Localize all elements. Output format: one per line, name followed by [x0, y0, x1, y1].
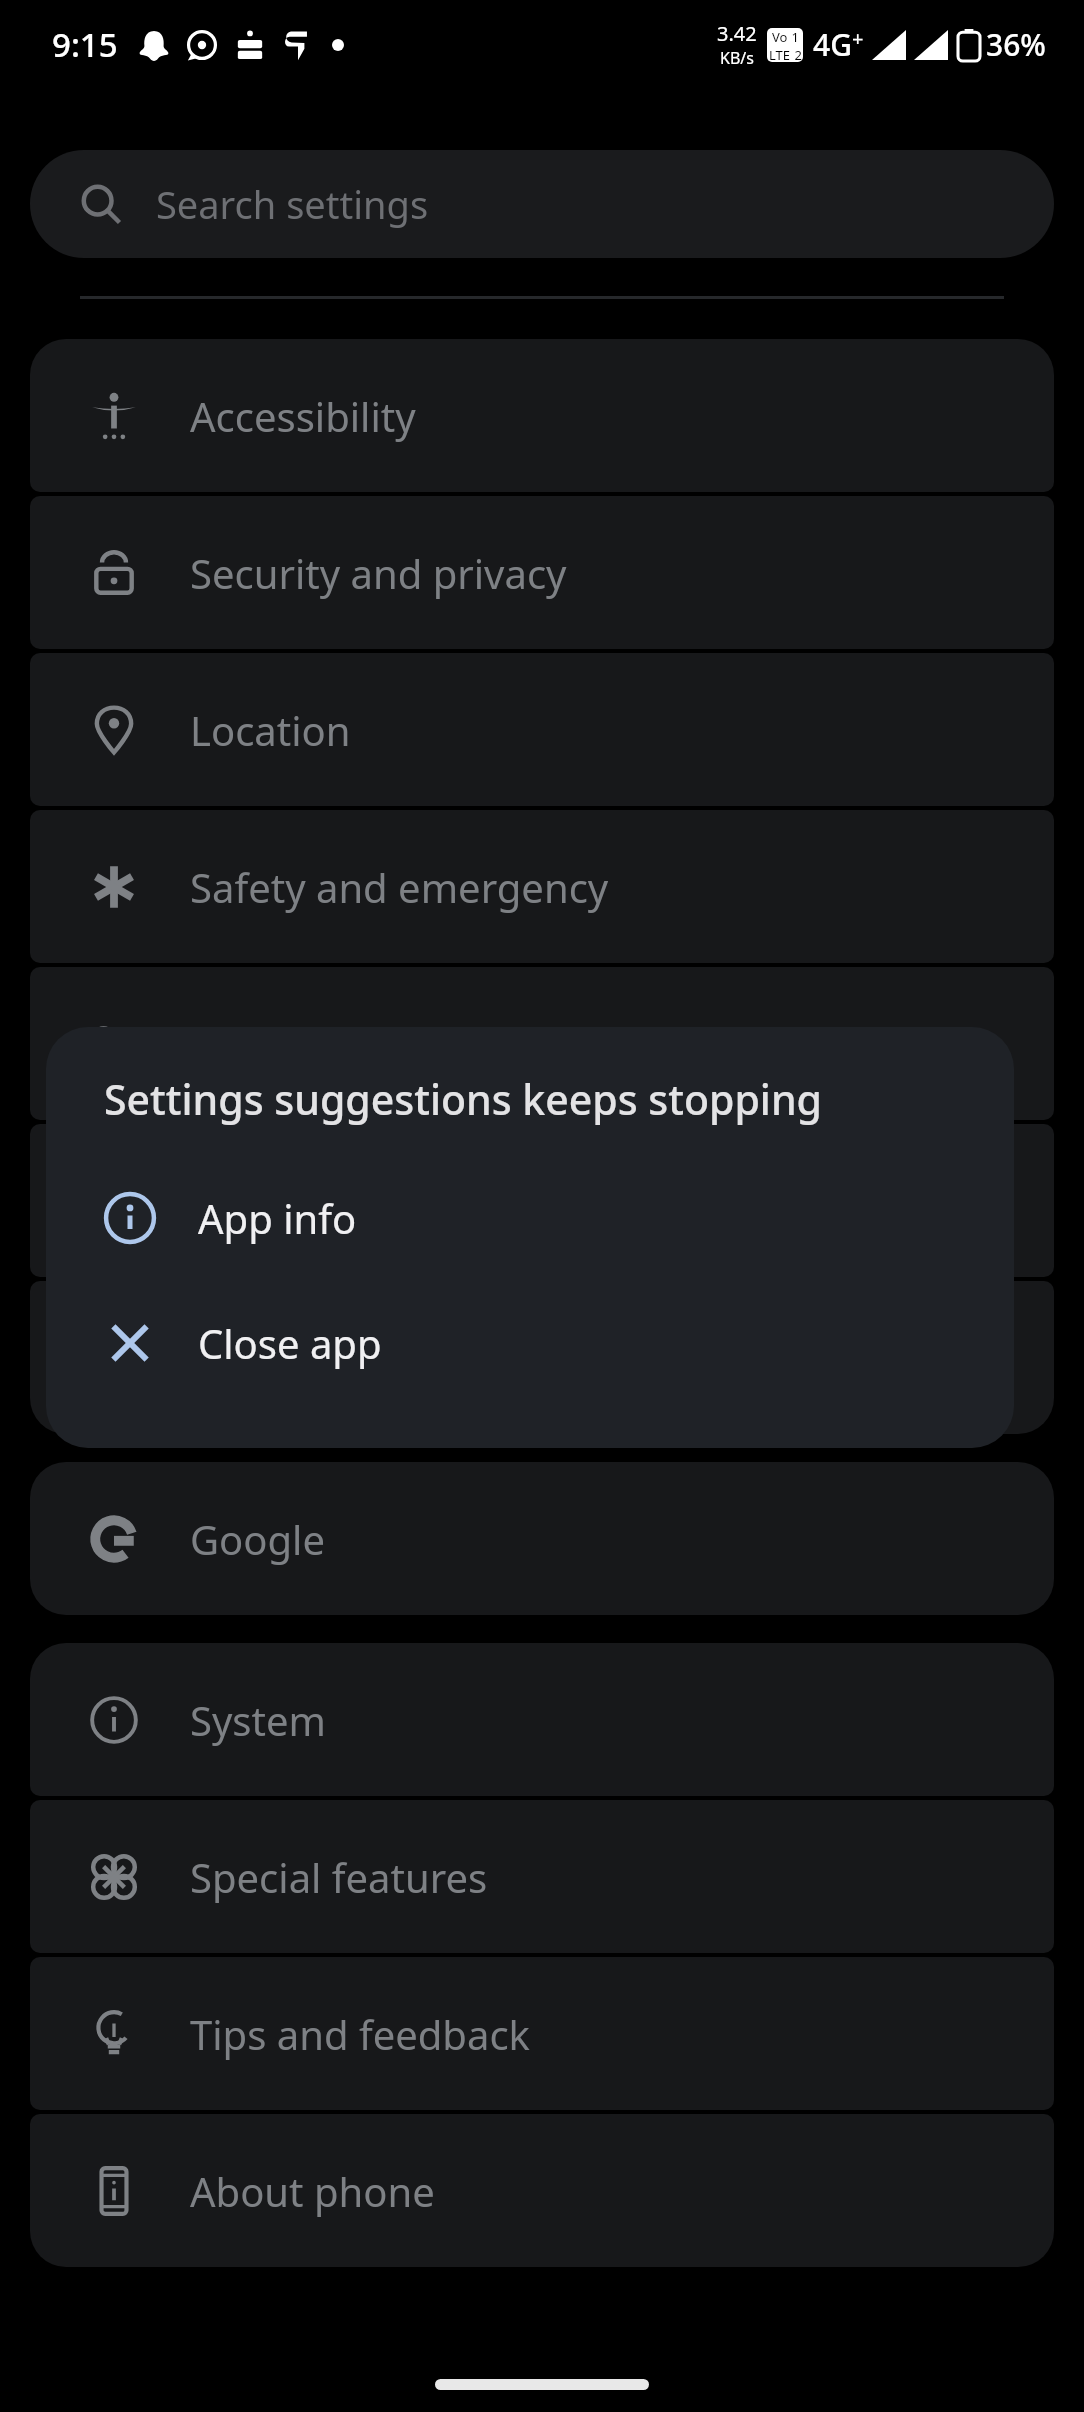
button[interactable]: Digital Wellbeing — [30, 1124, 1054, 1277]
staticText: Special features — [190, 1850, 488, 1904]
staticText: LTE — [769, 46, 791, 62]
staticText: Settings suggestions keeps stopping — [104, 1071, 823, 1127]
staticText: 36% — [986, 24, 1046, 65]
button[interactable]: Safety and emergency — [30, 810, 1054, 963]
staticText: 4G — [813, 24, 852, 65]
button[interactable]: Google — [30, 1462, 1054, 1615]
staticText: Location — [190, 703, 351, 757]
staticText: Accessibility — [190, 389, 416, 443]
button[interactable]: Close app — [46, 1280, 1014, 1405]
button[interactable]: Search settings — [30, 150, 1054, 258]
staticText: Safety and emergency — [190, 860, 609, 914]
staticText: About phone — [190, 2164, 435, 2218]
staticText: Passwords and accounts — [190, 1017, 651, 1071]
button[interactable]: Apps — [30, 1281, 1054, 1434]
staticText: Vo — [772, 28, 788, 46]
staticText: Google — [190, 1512, 325, 1566]
staticText: 1 — [788, 28, 799, 46]
button[interactable]: Accessibility — [30, 339, 1054, 492]
button[interactable]: Passwords and accounts — [30, 967, 1054, 1120]
staticText: Tips and feedback — [190, 2007, 530, 2061]
staticText: Apps — [190, 1331, 284, 1385]
button[interactable]: Special features — [30, 1800, 1054, 1953]
staticText: System — [190, 1693, 326, 1747]
button[interactable]: About phone — [30, 2114, 1054, 2267]
staticText: Close app — [198, 1316, 382, 1370]
staticText: 9:15 — [52, 22, 118, 67]
button[interactable]: Tips and feedback — [30, 1957, 1054, 2110]
staticText: + — [852, 25, 864, 52]
staticText: Search settings — [156, 178, 429, 230]
staticText: 2 — [791, 46, 802, 62]
button[interactable]: Location — [30, 653, 1054, 806]
button[interactable]: System — [30, 1643, 1054, 1796]
staticText: Digital Wellbeing — [190, 1174, 509, 1228]
staticText: Security and privacy — [190, 546, 567, 600]
staticText: 3.42 — [717, 20, 757, 47]
staticText: App info — [198, 1191, 357, 1245]
button[interactable]: Security and privacy — [30, 496, 1054, 649]
button[interactable]: App info — [46, 1155, 1014, 1280]
staticText: KB/s — [720, 47, 754, 69]
